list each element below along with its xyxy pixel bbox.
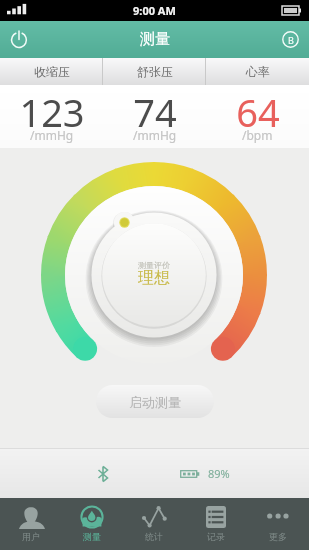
staticText: 测量 xyxy=(83,531,101,542)
staticText: 测量 xyxy=(140,30,170,49)
button[interactable]: 统计 xyxy=(123,498,185,550)
staticText: 123 xyxy=(19,86,85,138)
staticText: /bpm xyxy=(242,127,273,143)
button[interactable]: Power xyxy=(0,21,37,58)
staticText: 64 xyxy=(236,86,280,138)
staticText: 理想 xyxy=(138,268,170,288)
button[interactable]: 测量 xyxy=(61,498,123,550)
staticText: 记录 xyxy=(207,531,225,542)
button[interactable]: 收缩压 xyxy=(0,58,103,85)
staticText: 89% xyxy=(208,466,230,481)
button[interactable]: 记录 xyxy=(185,498,247,550)
staticText: 统计 xyxy=(145,531,163,542)
staticText: 用户 xyxy=(22,531,40,542)
staticText: 启动测量 xyxy=(129,394,181,410)
staticText: 舒张压 xyxy=(137,64,173,79)
button[interactable]: 心率 xyxy=(206,58,309,85)
staticText: B xyxy=(288,34,294,46)
button[interactable]: 用户 xyxy=(0,498,61,550)
staticText: 9:00 AM xyxy=(133,3,176,18)
staticText: 测量评价 xyxy=(138,260,170,270)
staticText: 心率 xyxy=(246,64,270,79)
staticText: 74 xyxy=(133,86,177,138)
staticText: /mmHg xyxy=(133,127,177,143)
button[interactable]: 更多 xyxy=(247,498,309,550)
staticText: 更多 xyxy=(269,531,287,542)
button[interactable]: Bluetooth device xyxy=(272,21,309,58)
staticText: 收缩压 xyxy=(34,64,70,79)
staticText: /mmHg xyxy=(30,127,74,143)
button[interactable]: 舒张压 xyxy=(103,58,206,85)
button[interactable]: 启动测量 xyxy=(96,385,214,418)
